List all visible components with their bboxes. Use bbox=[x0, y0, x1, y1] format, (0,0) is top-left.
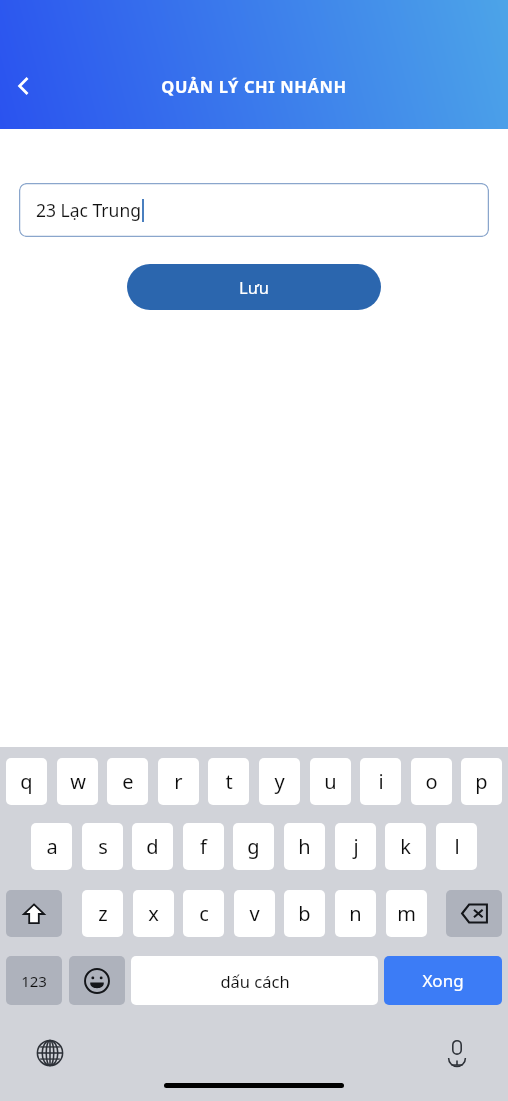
button[interactable]: m bbox=[386, 890, 427, 937]
staticText: c bbox=[199, 900, 209, 927]
button[interactable]: z bbox=[82, 890, 123, 937]
staticText: e bbox=[122, 768, 134, 795]
button[interactable]: a bbox=[31, 823, 72, 870]
staticText: l bbox=[454, 833, 460, 860]
staticText: x bbox=[148, 900, 159, 927]
staticText: m bbox=[397, 900, 416, 927]
button[interactable]: Lưu bbox=[127, 264, 381, 310]
button[interactable]: Back bbox=[2, 64, 46, 108]
staticText: 23 Lạc Trung bbox=[36, 198, 141, 222]
button[interactable]: v bbox=[234, 890, 275, 937]
staticText: 123 bbox=[21, 971, 47, 991]
staticText: s bbox=[98, 833, 108, 860]
staticText: a bbox=[46, 833, 58, 860]
staticText: g bbox=[247, 833, 260, 860]
button[interactable]: Numbers bbox=[6, 956, 62, 1005]
button[interactable]: o bbox=[411, 758, 452, 805]
button[interactable]: u bbox=[310, 758, 351, 805]
button[interactable]: s bbox=[82, 823, 123, 870]
staticText: d bbox=[146, 833, 159, 860]
staticText: QUẢN LÝ CHI NHÁNH bbox=[0, 75, 508, 97]
staticText: f bbox=[200, 833, 207, 860]
button[interactable]: 23 Lạc Trung bbox=[19, 183, 489, 237]
button[interactable]: x bbox=[133, 890, 174, 937]
button[interactable]: Xong bbox=[384, 956, 502, 1005]
button[interactable]: d bbox=[132, 823, 173, 870]
staticText: Xong bbox=[422, 969, 464, 992]
staticText: dấu cách bbox=[220, 970, 290, 992]
button[interactable]: p bbox=[461, 758, 502, 805]
staticText: o bbox=[425, 768, 438, 795]
button[interactable]: c bbox=[183, 890, 224, 937]
staticText: b bbox=[298, 900, 311, 927]
button[interactable]: k bbox=[385, 823, 426, 870]
button[interactable]: f bbox=[183, 823, 224, 870]
staticText: u bbox=[324, 768, 337, 795]
button[interactable]: t bbox=[208, 758, 249, 805]
staticText: j bbox=[353, 833, 359, 860]
staticText: h bbox=[298, 833, 311, 860]
button[interactable]: dấu cách bbox=[131, 956, 378, 1005]
button[interactable]: Change keyboard language bbox=[28, 1031, 72, 1075]
button[interactable]: r bbox=[158, 758, 199, 805]
staticText: q bbox=[20, 768, 33, 795]
button[interactable]: n bbox=[335, 890, 376, 937]
button[interactable]: Voice input bbox=[435, 1031, 479, 1075]
staticText: n bbox=[349, 900, 362, 927]
staticText: r bbox=[174, 768, 183, 795]
staticText: p bbox=[475, 768, 488, 795]
button[interactable]: q bbox=[6, 758, 47, 805]
button[interactable]: Emoji bbox=[69, 956, 125, 1005]
button[interactable]: i bbox=[360, 758, 401, 805]
button[interactable]: w bbox=[57, 758, 98, 805]
staticText: v bbox=[249, 900, 260, 927]
staticText: Lưu bbox=[239, 276, 269, 298]
staticText: z bbox=[98, 900, 108, 927]
staticText: y bbox=[274, 768, 285, 795]
button[interactable]: b bbox=[284, 890, 325, 937]
button[interactable]: Shift bbox=[6, 890, 62, 937]
button[interactable]: g bbox=[233, 823, 274, 870]
button[interactable]: j bbox=[335, 823, 376, 870]
button[interactable]: e bbox=[107, 758, 148, 805]
staticText: i bbox=[378, 768, 384, 795]
button[interactable]: y bbox=[259, 758, 300, 805]
button[interactable]: Backspace bbox=[446, 890, 502, 937]
button[interactable]: h bbox=[284, 823, 325, 870]
staticText: k bbox=[400, 833, 411, 860]
staticText: t bbox=[225, 768, 233, 795]
button[interactable]: l bbox=[436, 823, 477, 870]
staticText: w bbox=[70, 768, 86, 795]
